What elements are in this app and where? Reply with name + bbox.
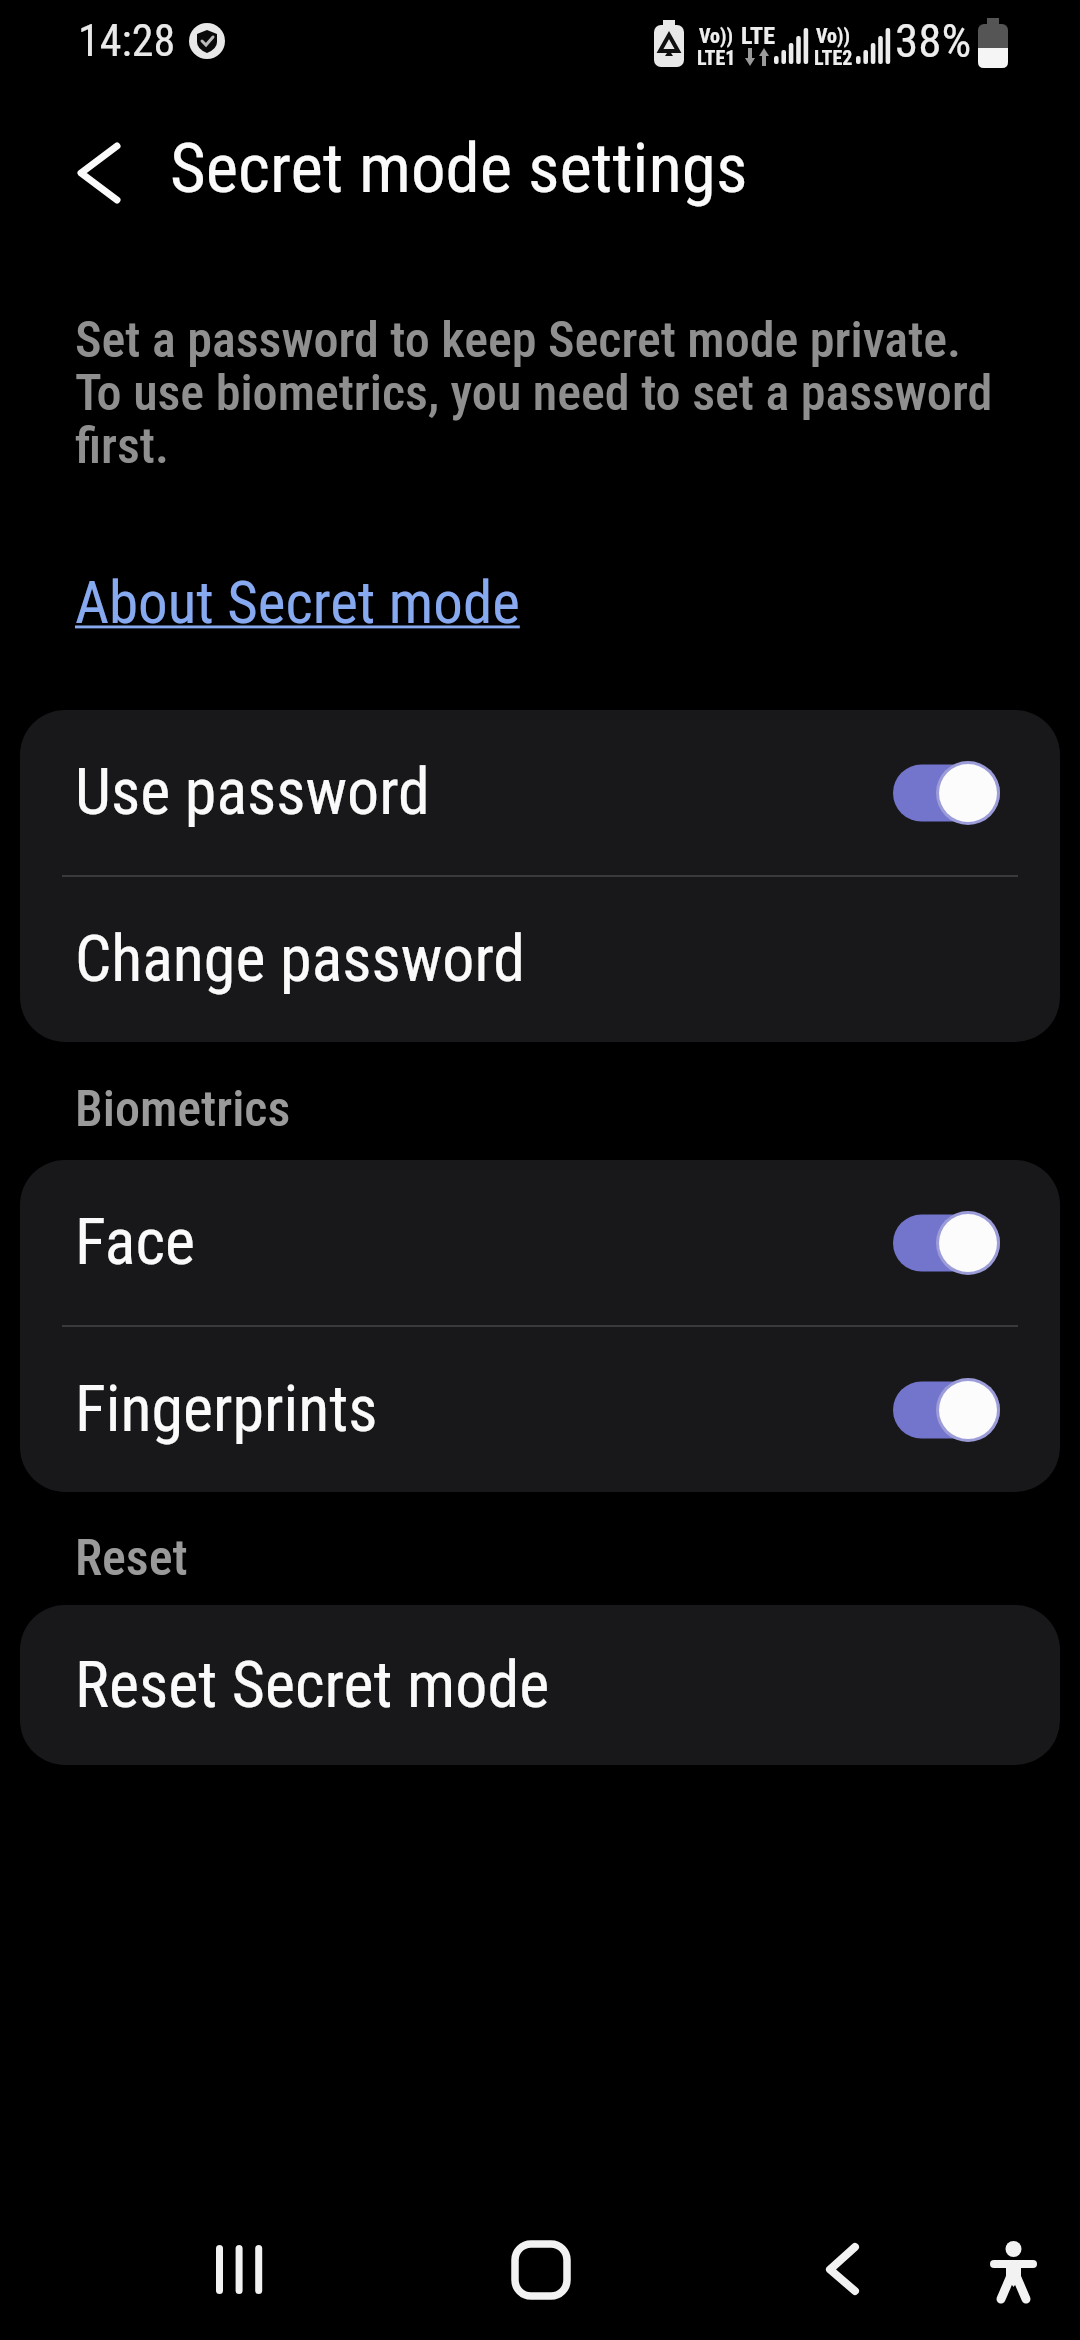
staticText: LTE2 [814, 46, 853, 69]
button[interactable]: About Secret mode [75, 568, 520, 637]
button[interactable]: Use password [20, 710, 1060, 875]
staticText: 14:28 [78, 15, 176, 67]
staticText: About Secret mode [75, 568, 520, 637]
button[interactable] [955, 2215, 1075, 2325]
button[interactable]: Face [20, 1160, 1060, 1325]
staticText: Vo)) [816, 24, 851, 47]
staticText: LTE [741, 22, 775, 50]
staticText: Use password [75, 755, 430, 830]
button[interactable]: Change password [20, 877, 1060, 1042]
staticText: Reset [75, 1529, 188, 1588]
staticText: Reset Secret mode [75, 1648, 550, 1723]
staticText: Change password [75, 922, 526, 997]
button[interactable] [471, 2215, 611, 2325]
staticText: Fingerprints [75, 1372, 378, 1447]
staticText: LTE1 [697, 46, 736, 69]
staticText: 38% [895, 13, 972, 68]
button[interactable] [60, 135, 135, 210]
button[interactable]: Reset Secret mode [20, 1605, 1060, 1765]
staticText: Vo)) [699, 24, 734, 47]
button[interactable] [772, 2215, 912, 2325]
staticText: Face [75, 1205, 195, 1280]
button[interactable]: Fingerprints [20, 1327, 1060, 1492]
button[interactable] [170, 2215, 310, 2325]
staticText: Set a password to keep Secret mode priva… [75, 311, 993, 475]
staticText: Secret mode settings [170, 128, 748, 209]
staticText: Biometrics [75, 1080, 291, 1139]
